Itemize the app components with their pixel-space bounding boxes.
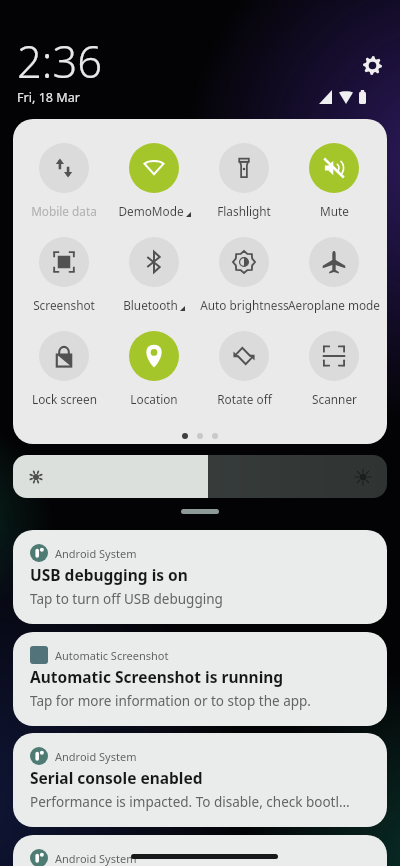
button[interactable]: Auto brightness [195,237,293,313]
staticText: Rotate off [217,391,272,407]
button[interactable]: Rotate off [195,331,293,407]
staticText: Performance is impacted. To disable, che… [30,793,350,811]
button[interactable]: Android System [13,835,387,866]
staticText: 2:36 [17,31,103,90]
staticText: USB debugging is on [30,564,188,585]
staticText: Fri, 18 Mar [17,89,81,106]
staticText: Automatic Screenshot [55,648,169,663]
staticText: Mute [320,203,349,219]
staticText: Bluetooth [123,297,178,313]
button[interactable]: Lock screen [15,331,113,407]
staticText: DemoMode [118,203,184,219]
staticText: Scanner [312,391,357,407]
button[interactable]: Android System [13,530,387,624]
button[interactable]: Screenshot [15,237,113,313]
staticText: Mobile data [31,203,97,219]
staticText: Aeroplane mode [288,297,380,313]
button[interactable]: Mobile data [15,143,113,219]
staticText: Android System [55,851,137,866]
staticText: Android System [55,749,137,764]
staticText: Automatic Screenshot is running [30,666,284,687]
button[interactable]: Aeroplane mode [285,237,383,313]
button[interactable]: Scanner [285,331,383,407]
staticText: Flashlight [217,203,271,219]
button[interactable]: Flashlight [195,143,293,219]
button[interactable]: Mute [285,143,383,219]
staticText: Serial console enabled [30,767,203,788]
button[interactable]: Bluetooth [105,237,203,313]
button[interactable]: Automatic Screenshot [13,632,387,726]
button[interactable]: Android System [13,733,387,827]
staticText: Android System [55,546,137,561]
button[interactable]: DemoMode [105,143,203,219]
button[interactable]: Settings [358,51,386,79]
button[interactable]: Brightness [13,455,387,498]
staticText: Screenshot [33,297,95,313]
staticText: Auto brightness [200,297,289,313]
staticText: Tap for more information or to stop the … [30,692,311,710]
staticText: Lock screen [32,391,97,407]
staticText: Location [130,391,178,407]
button[interactable]: Location [105,331,203,407]
staticText: Tap to turn off USB debugging [30,590,223,608]
